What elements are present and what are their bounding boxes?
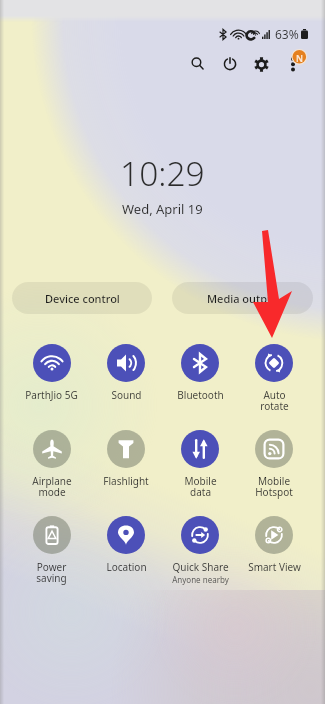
button[interactable]: Settings bbox=[248, 51, 274, 77]
staticText: Flashlight bbox=[103, 474, 149, 488]
button[interactable]: Device control bbox=[12, 282, 152, 314]
staticText: ParthJio 5G bbox=[25, 388, 78, 402]
button[interactable]: Search bbox=[184, 50, 210, 76]
button[interactable]: Airplane mode bbox=[14, 430, 89, 499]
button[interactable]: Flashlight bbox=[89, 430, 163, 488]
staticText: N bbox=[296, 52, 303, 64]
button[interactable]: Mobile data bbox=[163, 430, 237, 499]
staticText: Mobile data bbox=[184, 474, 217, 499]
button[interactable]: Power bbox=[217, 51, 243, 77]
staticText: Mobile Hotspot bbox=[255, 474, 293, 499]
staticText: Bluetooth bbox=[177, 388, 224, 402]
staticText: Power saving bbox=[36, 560, 67, 585]
button[interactable]: Quick Share bbox=[163, 516, 237, 585]
staticText: 10:29 bbox=[120, 150, 205, 196]
staticText: Sound bbox=[111, 388, 142, 402]
staticText: Airplane mode bbox=[32, 474, 72, 499]
button[interactable]: ParthJio 5G bbox=[14, 344, 89, 402]
staticText: Smart View bbox=[248, 560, 301, 574]
staticText: Media output bbox=[207, 291, 279, 306]
button[interactable]: Mobile Hotspot bbox=[237, 430, 311, 499]
button[interactable]: Sound bbox=[89, 344, 163, 402]
button[interactable]: More options bbox=[283, 49, 309, 79]
button[interactable]: Auto rotate bbox=[237, 344, 311, 413]
staticText: Location bbox=[106, 560, 147, 574]
button[interactable]: Bluetooth bbox=[163, 344, 237, 402]
button[interactable]: Location bbox=[89, 516, 163, 574]
button[interactable]: Power saving bbox=[14, 516, 89, 585]
button[interactable]: Media output bbox=[172, 282, 313, 314]
button[interactable]: Smart View bbox=[237, 516, 311, 574]
staticText: Device control bbox=[45, 291, 120, 306]
staticText: Auto rotate bbox=[260, 388, 289, 413]
staticText: Quick Share bbox=[172, 560, 229, 574]
staticText: 63% bbox=[275, 26, 299, 42]
staticText: Wed, April 19 bbox=[122, 200, 203, 218]
staticText: Anyone nearby bbox=[172, 574, 229, 585]
